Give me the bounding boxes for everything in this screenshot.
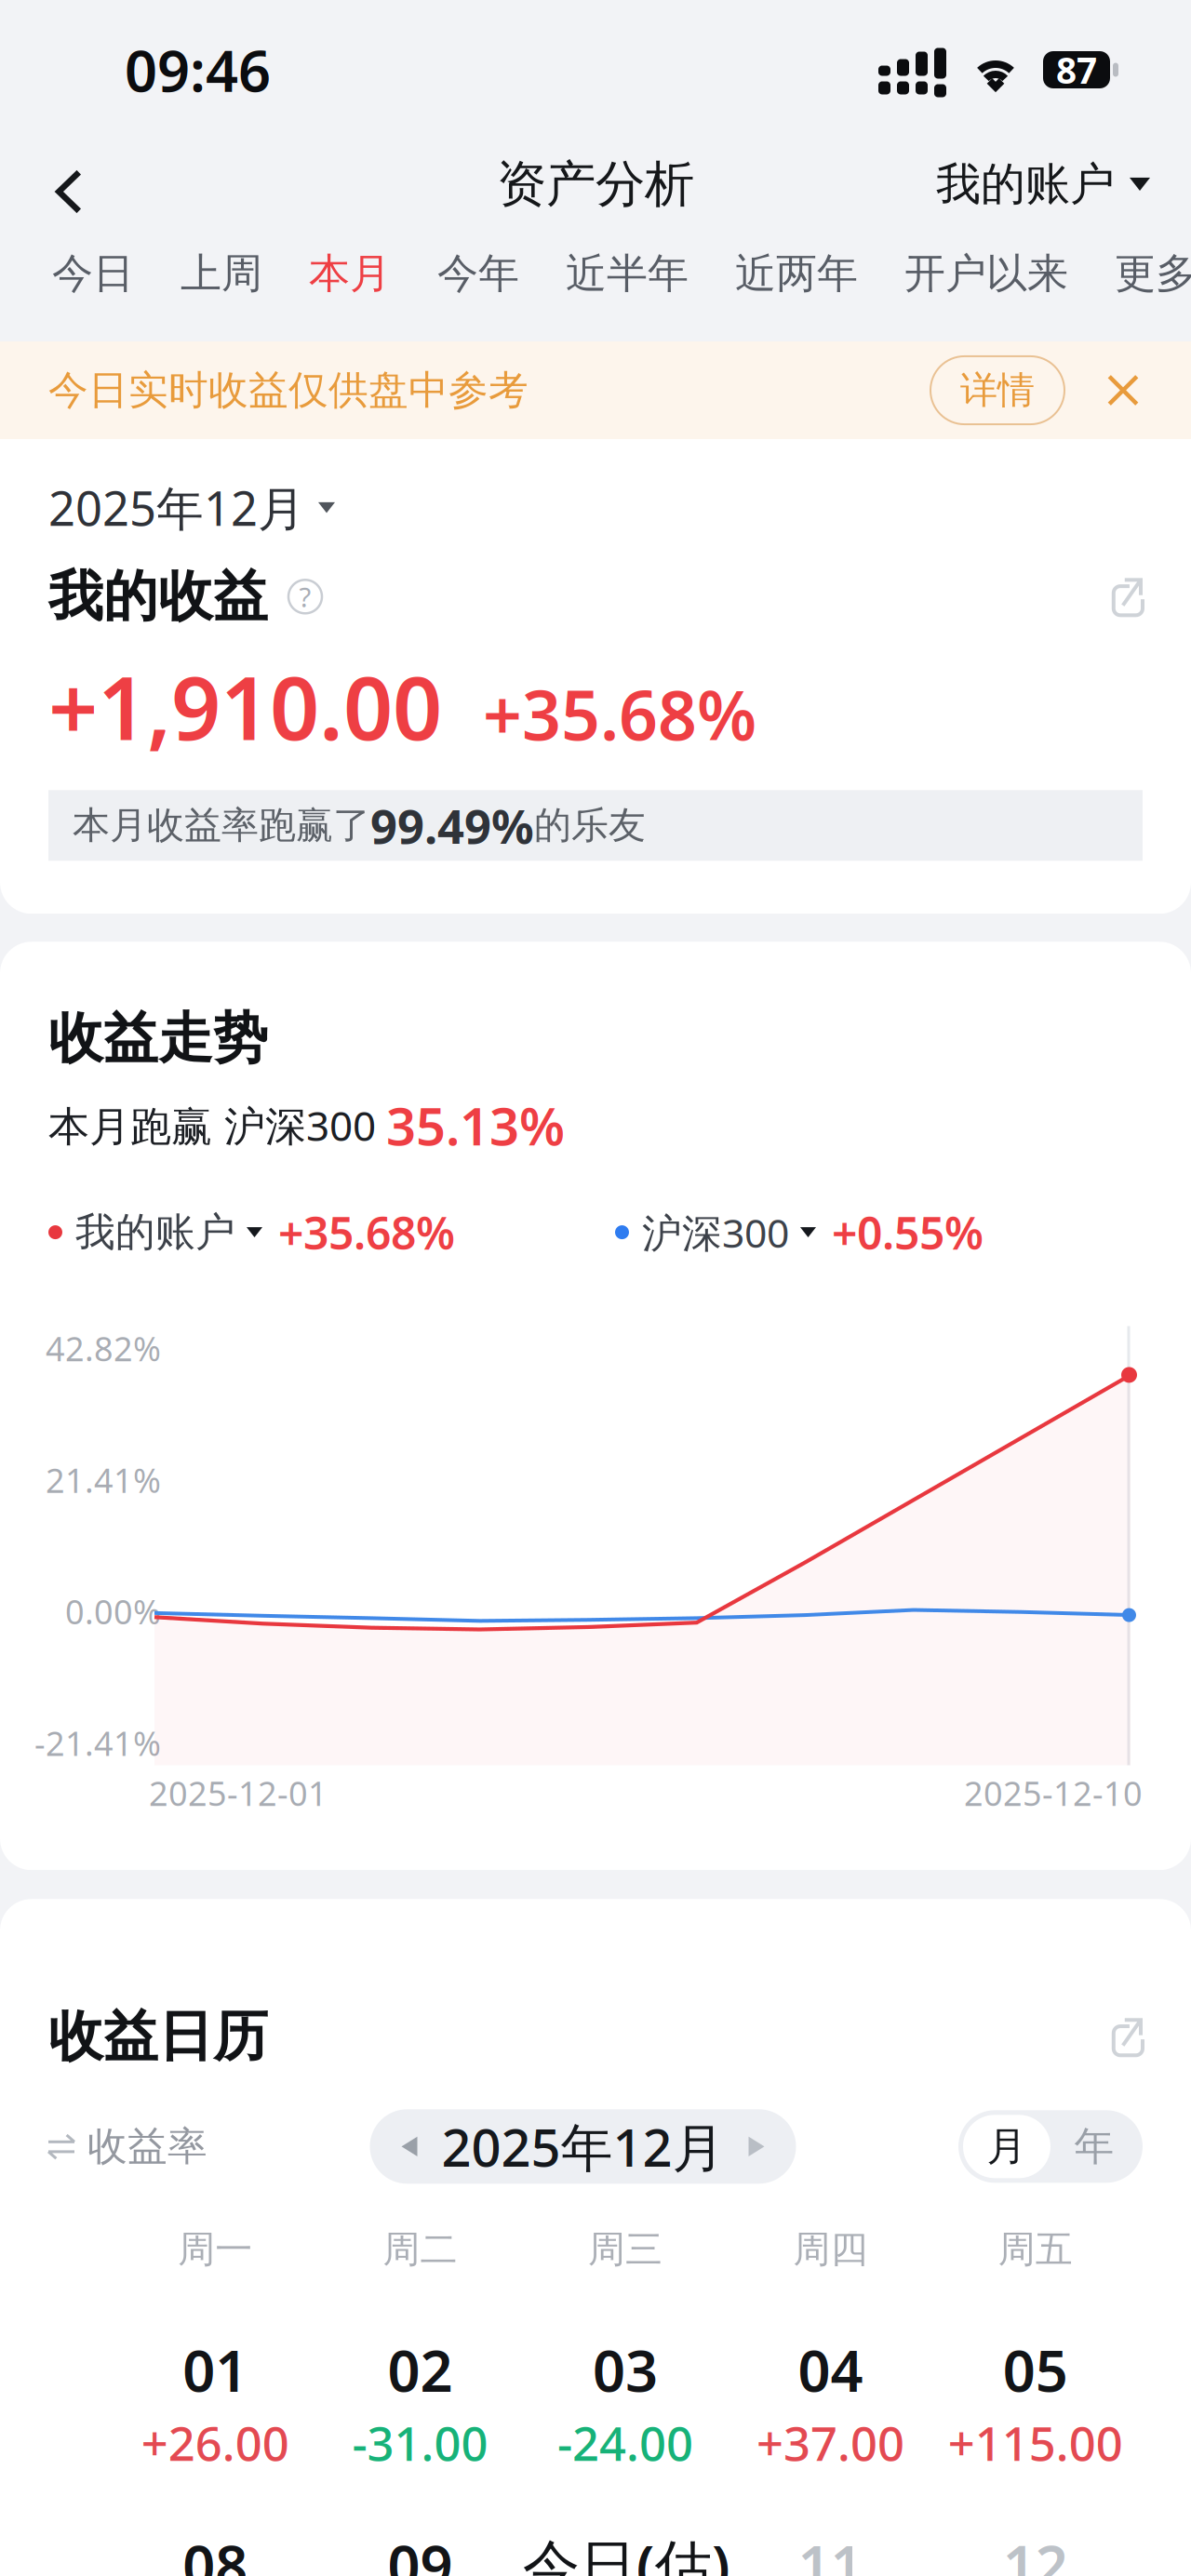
staticText: 的乐友 <box>534 803 646 848</box>
staticText: 收益率 <box>87 2122 207 2171</box>
staticText: +115.00 <box>948 2411 1123 2474</box>
button[interactable]: 03 <box>523 2332 728 2474</box>
staticText: 沪深300 <box>642 1206 789 1259</box>
staticText: 周五 <box>998 2226 1073 2272</box>
button[interactable]: 近半年 <box>542 229 712 318</box>
button[interactable]: 01 <box>113 2332 318 2474</box>
staticText: -31.00 <box>352 2411 488 2474</box>
button[interactable]: 02 <box>318 2332 523 2474</box>
staticText: 本月收益率跑赢了 <box>73 803 370 848</box>
staticText: 今日(估) <box>523 2527 730 2576</box>
staticText: 上周 <box>181 248 262 299</box>
staticText: +26.00 <box>141 2411 289 2474</box>
staticText: 本月跑赢 沪深300 <box>48 1098 386 1152</box>
staticText: 近半年 <box>566 248 689 299</box>
staticText: 更多 <box>1115 248 1191 299</box>
button[interactable]: 更多 <box>1091 229 1191 318</box>
button[interactable]: 我的账户 <box>48 1203 455 1262</box>
button[interactable]: 本月 <box>286 229 414 318</box>
staticText: +1,910.00 <box>48 649 442 764</box>
staticText: 05 <box>1003 2332 1068 2408</box>
button[interactable]: 详情 <box>930 356 1064 424</box>
staticText: -21.41% <box>34 1721 161 1765</box>
staticText: 21.41% <box>46 1458 161 1502</box>
staticText: 开户以来 <box>904 248 1068 299</box>
button[interactable]: 12 <box>933 2527 1138 2576</box>
staticText: 周二 <box>383 2226 457 2272</box>
staticText: 09 <box>388 2527 453 2576</box>
staticText: 今日实时收益仅供盘中参考 <box>48 366 529 415</box>
staticText: 详情 <box>960 367 1035 413</box>
staticText: 收益日历 <box>48 2003 268 2070</box>
staticText: 我的账户 <box>936 157 1115 212</box>
button[interactable]: 今年 <box>414 229 542 318</box>
button[interactable]: 今日 <box>29 229 157 318</box>
staticText: 04 <box>798 2332 863 2408</box>
button[interactable]: 月 <box>963 2115 1050 2178</box>
staticText: 2025年12月 <box>48 476 305 539</box>
button[interactable]: 我的账户 <box>936 140 1191 229</box>
button[interactable]: 04 <box>728 2332 933 2474</box>
staticText: 周一 <box>178 2226 252 2272</box>
staticText: 我的账户 <box>75 1208 235 1257</box>
button[interactable]: 2025年12月 <box>370 2109 796 2184</box>
staticText: 11 <box>798 2527 863 2576</box>
staticText: 2025年12月 <box>442 2112 724 2181</box>
button[interactable]: 开户以来 <box>881 229 1091 318</box>
button[interactable]: 关闭 <box>1107 374 1139 406</box>
staticText: 02 <box>388 2332 453 2408</box>
staticText: 09:46 <box>125 32 271 108</box>
staticText: 今日 <box>52 248 134 299</box>
staticText: 03 <box>593 2332 658 2408</box>
staticText: 本月 <box>309 248 391 299</box>
button[interactable]: 近两年 <box>712 229 881 318</box>
staticText: 今年 <box>437 248 519 299</box>
staticText: 0.00% <box>65 1589 161 1634</box>
button[interactable]: 上周 <box>157 229 286 318</box>
button[interactable]: 2025年12月 <box>48 476 335 539</box>
staticText: 87 <box>1056 46 1097 94</box>
button[interactable]: 年 <box>1050 2115 1138 2178</box>
button[interactable]: 收益率 <box>48 2122 207 2171</box>
staticText: 月 <box>987 2122 1027 2171</box>
staticText: 99.49% <box>370 794 534 857</box>
button[interactable]: 今日(估) <box>523 2527 728 2576</box>
button[interactable]: 09 <box>318 2527 523 2576</box>
staticText: +37.00 <box>756 2411 904 2474</box>
button[interactable]: 日历详情 <box>1105 2018 1143 2055</box>
staticText: 周三 <box>588 2226 662 2272</box>
staticText: 2025-12-10 <box>964 1771 1143 1815</box>
staticText: 35.13% <box>386 1091 565 1160</box>
staticText: 12 <box>1003 2527 1068 2576</box>
staticText: 年 <box>1074 2122 1114 2171</box>
staticText: 2025-12-01 <box>149 1771 328 1815</box>
button[interactable]: 收益详情 <box>1105 578 1143 615</box>
staticText: 收益走势 <box>48 1005 268 1072</box>
staticText: ? <box>299 578 311 615</box>
staticText: 我的收益 <box>48 563 268 630</box>
button[interactable]: 11 <box>728 2527 933 2576</box>
staticText: 42.82% <box>46 1326 161 1371</box>
staticText: -24.00 <box>557 2411 693 2474</box>
button[interactable]: 返回 <box>0 140 138 229</box>
staticText: 近两年 <box>735 248 858 299</box>
staticText: 周四 <box>793 2226 868 2272</box>
staticText: 08 <box>183 2527 248 2576</box>
staticText: 01 <box>183 2332 248 2408</box>
staticText: +35.68% <box>278 1203 455 1262</box>
staticText: +0.55% <box>832 1203 984 1262</box>
button[interactable]: 05 <box>933 2332 1138 2474</box>
button[interactable]: 08 <box>113 2527 318 2576</box>
button[interactable]: 沪深300 <box>615 1203 984 1262</box>
staticText: 资产分析 <box>497 154 694 215</box>
staticText: +35.68% <box>483 668 756 759</box>
